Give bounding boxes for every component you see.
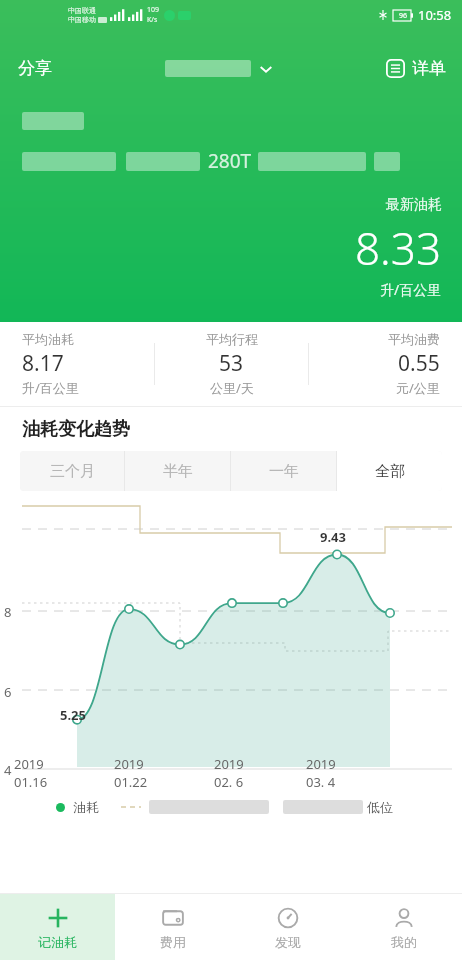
staticText: 2019 (306, 755, 336, 773)
staticText: 6 (4, 683, 12, 701)
staticText: 8 (4, 603, 12, 621)
staticText: 三个月 (50, 462, 95, 481)
staticText: 元/公里 (396, 379, 440, 397)
staticText: 记油耗 (38, 934, 77, 950)
staticText: 我的 (391, 934, 417, 950)
staticText: 全部 (375, 462, 405, 481)
staticText: 平均油费 (388, 331, 440, 347)
staticText: 8.17 (22, 349, 64, 378)
staticText: 油耗变化趋势 (22, 418, 130, 441)
staticText: K/s (147, 15, 158, 25)
staticText: 02. 6 (214, 773, 244, 791)
button[interactable]: 三个月 (20, 451, 124, 491)
staticText: 半年 (163, 462, 193, 481)
staticText: 平均油耗 (22, 331, 74, 347)
staticText: 公里/天 (210, 379, 254, 397)
staticText: 中国联通 (68, 6, 96, 15)
button[interactable]: 分享 (0, 52, 64, 85)
staticText: 油耗 (73, 799, 99, 815)
staticText: 53 (219, 349, 244, 378)
button[interactable]: 详单 (374, 52, 462, 85)
staticText: 一年 (269, 462, 299, 481)
staticText: 10:58 (418, 6, 452, 24)
button[interactable]: 平均行程 (155, 331, 308, 397)
staticText: 2019 (214, 755, 244, 773)
staticText: 01.22 (114, 773, 148, 791)
button[interactable]: 半年 (125, 451, 230, 491)
staticText: 发现 (275, 934, 301, 950)
staticText: 最新油耗 (386, 196, 442, 214)
staticText: 9.43 (320, 528, 346, 546)
button[interactable] (159, 54, 279, 83)
staticText: 2019 (14, 755, 44, 773)
staticText: 2019 (114, 755, 144, 773)
button[interactable]: 一年 (231, 451, 336, 491)
staticText: 升/百公里 (22, 379, 79, 397)
staticText: 8.33 (355, 218, 442, 278)
button[interactable]: 记油耗 (0, 894, 115, 960)
staticText: 升/百公里 (380, 280, 442, 299)
staticText: 低位 (367, 799, 393, 815)
staticText: 03. 4 (306, 773, 336, 791)
staticText: 109 (147, 5, 160, 15)
staticText: 96 (399, 11, 408, 21)
staticText: 5.25 (60, 706, 86, 724)
staticText: 分享 (18, 58, 52, 79)
staticText: 01.16 (14, 773, 48, 791)
staticText: 4 (4, 761, 12, 779)
button[interactable]: 平均油耗 (0, 331, 154, 397)
button[interactable]: 平均油费 (309, 331, 462, 397)
button[interactable]: 发现 (230, 894, 346, 960)
staticText: 平均行程 (206, 331, 258, 347)
staticText: 中国移动 (68, 15, 96, 24)
button[interactable]: 费用 (115, 894, 230, 960)
staticText: 280T (208, 148, 252, 174)
staticText: 0.55 (398, 349, 440, 378)
button[interactable]: 全部 (337, 451, 442, 491)
button[interactable]: 我的 (346, 894, 462, 960)
staticText: 详单 (412, 58, 446, 79)
staticText: 费用 (160, 934, 186, 950)
